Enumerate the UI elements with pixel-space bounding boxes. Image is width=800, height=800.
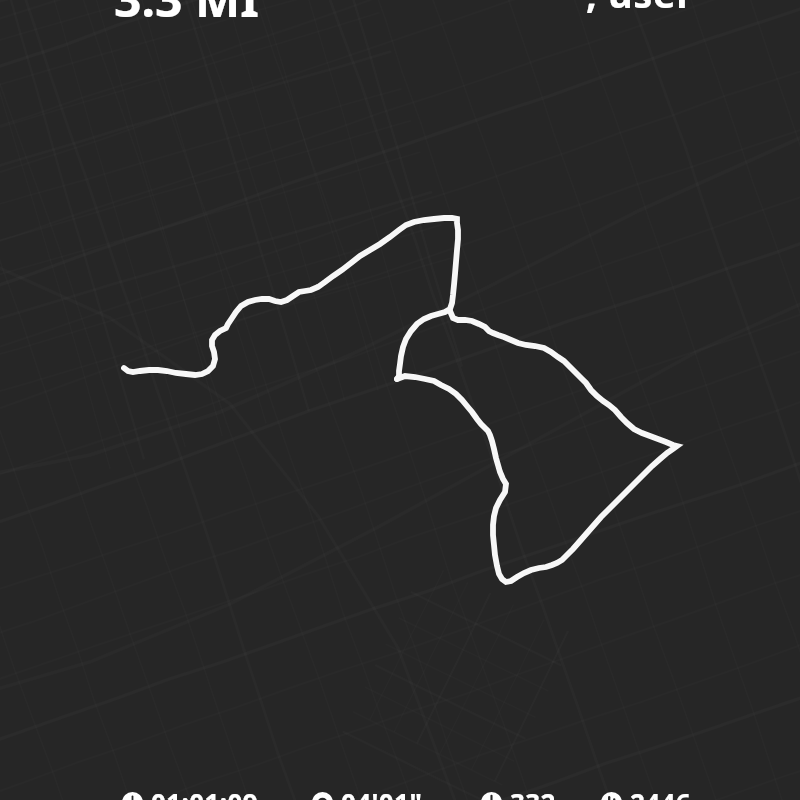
staticText: 3.3 MI bbox=[114, 0, 259, 31]
button[interactable]: Route map bbox=[0, 0, 800, 800]
button[interactable]: 01:01:09 bbox=[122, 785, 259, 800]
button[interactable]: 2446 bbox=[601, 785, 692, 800]
staticText: 04'01" bbox=[341, 785, 423, 800]
staticText: 01:01:09 bbox=[151, 785, 259, 800]
button[interactable]: , user bbox=[586, 0, 694, 19]
button[interactable]: 04'01" bbox=[312, 785, 423, 800]
staticText: 332 bbox=[510, 785, 556, 800]
button[interactable]: 3.3 MI bbox=[114, 0, 259, 31]
button[interactable]: 332 bbox=[481, 785, 556, 800]
staticText: 2446 bbox=[630, 785, 692, 800]
staticText: , user bbox=[586, 0, 694, 19]
